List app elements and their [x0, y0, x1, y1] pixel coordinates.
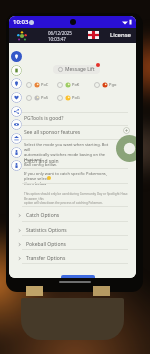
button[interactable]: PoK	[57, 80, 80, 89]
staticText: If you only want to catch specific Pokem…	[24, 171, 118, 181]
button[interactable]: Statistics Options	[17, 226, 129, 235]
button[interactable]: Language	[88, 31, 99, 39]
button[interactable]: PoS	[26, 93, 49, 102]
button[interactable]: Add	[123, 127, 130, 134]
staticText: Select the mode you want when starting. …	[24, 142, 112, 152]
staticText: License	[110, 31, 131, 39]
staticText: PoG	[72, 95, 80, 100]
button[interactable]: Catch and spin	[24, 158, 116, 167]
button[interactable]: Tool 6	[11, 133, 22, 144]
staticText: PGTools is good?	[24, 115, 64, 122]
button[interactable]: PGTools is good?	[24, 115, 116, 124]
staticText: PoS	[41, 95, 49, 100]
staticText: them below	[24, 181, 47, 186]
staticText: PoC	[41, 82, 49, 87]
button[interactable]: PoC	[26, 80, 49, 89]
staticText: Catch Options	[26, 212, 60, 219]
staticText: Pokeball Options	[26, 241, 66, 248]
button[interactable]: Message Lift	[53, 65, 100, 74]
staticText: Ball config below.	[24, 162, 57, 167]
staticText: Statistics Options	[26, 227, 67, 234]
staticText: Message Lift	[65, 66, 95, 73]
button[interactable]: License	[110, 31, 131, 39]
staticText: 10:03:47	[48, 36, 66, 42]
staticText: option will slow down the process of cat…	[24, 201, 103, 205]
staticText: Transfer Options	[26, 255, 66, 262]
button[interactable]: Tool 7	[11, 147, 22, 158]
staticText: Pgo	[109, 82, 117, 87]
button[interactable]: Tool 1	[11, 65, 22, 76]
staticText: Catch and spin	[24, 158, 59, 165]
staticText: automatically switches mode basing on th…	[24, 152, 112, 162]
button[interactable]: Pgo	[94, 80, 117, 89]
button[interactable]: Transfer Options	[17, 254, 129, 263]
button[interactable]: See all sponsor features	[24, 129, 116, 138]
staticText: 10:03	[13, 18, 29, 26]
button[interactable]: Tool 5	[11, 119, 22, 130]
staticText: 06/12/2025	[48, 30, 72, 36]
staticText: This option should only be used during C…	[24, 192, 129, 201]
button[interactable]: Tool 3	[11, 92, 22, 103]
button[interactable]: Catch Options	[17, 211, 129, 220]
button[interactable]: Tool 0	[11, 51, 22, 62]
button[interactable]: Start Service	[61, 275, 95, 278]
staticText: PoK	[72, 82, 80, 87]
button[interactable]: Tool 8	[11, 160, 22, 171]
button[interactable]: Pokeball Options	[17, 240, 129, 249]
button[interactable]: PoG	[57, 93, 80, 102]
button[interactable]: Tool 2	[11, 78, 22, 89]
button[interactable]: Tool 4	[11, 106, 22, 117]
staticText: See all sponsor features	[24, 129, 81, 136]
